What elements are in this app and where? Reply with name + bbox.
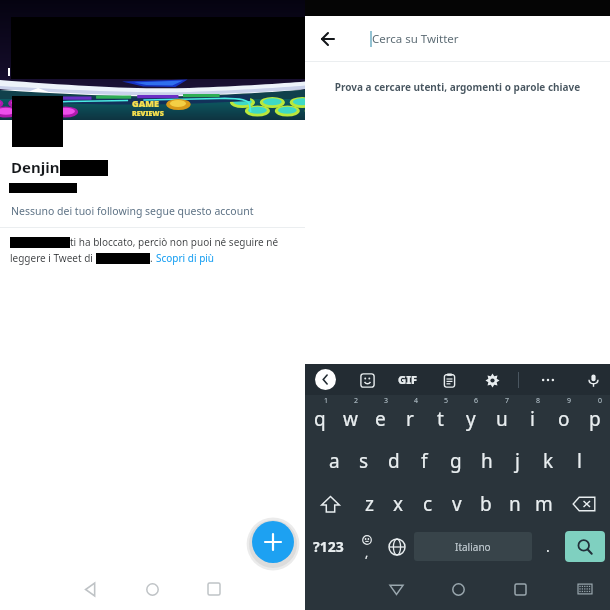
- button[interactable]: 9: [548, 395, 579, 439]
- button[interactable]: Scopri di più: [156, 251, 215, 265]
- button[interactable]: g: [440, 439, 471, 483]
- button[interactable]: Chiudi tastiera: [379, 572, 413, 606]
- staticText: 6: [474, 396, 479, 406]
- button[interactable]: Adesivi: [356, 369, 378, 391]
- button[interactable]: Scrivi un Tweet: [252, 521, 294, 563]
- button[interactable]: Indietro: [315, 369, 336, 390]
- staticText: p: [589, 406, 601, 432]
- staticText: Denjin: [11, 157, 60, 177]
- staticText: z: [365, 491, 374, 517]
- staticText: 4: [414, 396, 419, 406]
- button[interactable]: Cambia lingua: [382, 525, 411, 568]
- button[interactable]: Indietro: [305, 16, 350, 61]
- button[interactable]: 4: [395, 395, 425, 439]
- button[interactable]: 6: [455, 395, 486, 439]
- staticText: w: [343, 406, 358, 432]
- staticText: i: [530, 406, 535, 432]
- staticText: 9: [567, 396, 572, 406]
- button[interactable]: 1: [305, 395, 335, 439]
- button[interactable]: Italiano: [414, 532, 532, 561]
- staticText: t: [437, 406, 444, 432]
- button[interactable]: 5: [425, 395, 455, 439]
- button[interactable]: j: [502, 439, 533, 483]
- staticText: c: [423, 491, 433, 517]
- staticText: n: [509, 491, 521, 517]
- staticText: g: [450, 448, 462, 474]
- button[interactable]: z: [355, 483, 384, 525]
- staticText: m: [535, 491, 553, 517]
- staticText: h: [481, 448, 493, 474]
- staticText: v: [452, 491, 462, 517]
- staticText: d: [388, 448, 400, 474]
- button[interactable]: n: [500, 483, 529, 525]
- button[interactable]: x: [384, 483, 413, 525]
- button[interactable]: c: [413, 483, 442, 525]
- staticText: q: [314, 406, 326, 432]
- staticText: 0: [598, 396, 603, 406]
- button[interactable]: Emoji e virgola: [352, 525, 382, 568]
- button[interactable]: .: [535, 525, 560, 568]
- staticText: GAME: [132, 97, 159, 109]
- staticText: 3: [384, 396, 389, 406]
- button[interactable]: d: [379, 439, 409, 483]
- staticText: s: [359, 448, 369, 474]
- staticText: ?123: [313, 537, 344, 556]
- button[interactable]: Impostazioni: [481, 369, 503, 391]
- staticText: 1: [324, 396, 329, 406]
- staticText: k: [543, 448, 554, 474]
- staticText: u: [496, 406, 508, 432]
- staticText: leggere i Tweet di: [10, 251, 96, 265]
- staticText: 5: [444, 396, 449, 406]
- button[interactable]: v: [442, 483, 471, 525]
- staticText: 2: [354, 396, 359, 406]
- button[interactable]: Maiuscole: [305, 483, 355, 525]
- button[interactable]: Appunti: [438, 369, 460, 391]
- button[interactable]: Altro: [537, 369, 559, 391]
- button[interactable]: f: [409, 439, 440, 483]
- button[interactable]: 7: [486, 395, 517, 439]
- button[interactable]: k: [533, 439, 564, 483]
- button[interactable]: s: [349, 439, 379, 483]
- staticText: 7: [505, 396, 510, 406]
- staticText: j: [515, 448, 520, 474]
- button[interactable]: Recenti: [503, 572, 537, 606]
- staticText: Prova a cercare utenti, argomenti o paro…: [305, 80, 610, 94]
- button[interactable]: 8: [517, 395, 548, 439]
- staticText: b: [480, 491, 492, 517]
- staticText: e: [375, 406, 386, 432]
- staticText: .: [546, 537, 550, 556]
- button[interactable]: Seleziona tastiera: [570, 574, 600, 604]
- staticText: a: [329, 448, 340, 474]
- button[interactable]: Cerca: [565, 531, 605, 562]
- staticText: .: [150, 251, 156, 265]
- staticText: GIF: [398, 372, 417, 387]
- staticText: x: [393, 491, 404, 517]
- staticText: ti ha bloccato, perciò non puoi né segui…: [70, 235, 279, 249]
- button[interactable]: ?123: [305, 525, 352, 568]
- staticText: y: [466, 406, 476, 432]
- staticText: Nessuno dei tuoi following segue questo …: [11, 204, 254, 218]
- staticText: f: [421, 448, 428, 474]
- button[interactable]: 0: [579, 395, 610, 439]
- button[interactable]: m: [529, 483, 558, 525]
- staticText: Italiano: [455, 540, 491, 554]
- button[interactable]: Cancella: [558, 483, 610, 525]
- staticText: REVIEWS: [132, 109, 164, 119]
- button[interactable]: 2: [335, 395, 365, 439]
- button[interactable]: Recenti: [194, 569, 234, 609]
- button[interactable]: b: [471, 483, 500, 525]
- staticText: o: [558, 406, 570, 432]
- button[interactable]: 3: [365, 395, 395, 439]
- button[interactable]: a: [319, 439, 349, 483]
- staticText: ,: [365, 544, 369, 560]
- button[interactable]: l: [564, 439, 595, 483]
- staticText: r: [406, 406, 414, 432]
- button[interactable]: Indietro: [70, 569, 110, 609]
- staticText: 8: [536, 396, 541, 406]
- staticText: Cerca su Twitter: [372, 31, 459, 47]
- staticText: l: [577, 448, 582, 474]
- button[interactable]: Home: [132, 569, 172, 609]
- button[interactable]: h: [471, 439, 502, 483]
- button[interactable]: Home: [441, 572, 475, 606]
- button[interactable]: Voce: [582, 369, 604, 391]
